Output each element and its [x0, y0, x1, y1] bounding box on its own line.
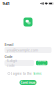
button[interactable]: I agree to the [8, 71, 41, 75]
staticText: Code [4, 54, 12, 59]
staticText: you@example.com [7, 47, 38, 52]
staticText: 9:41 [2, 1, 9, 6]
staticText: Send code [38, 59, 46, 67]
staticText: Terms [33, 71, 41, 75]
staticText: 6-digit code [7, 58, 17, 68]
button[interactable]: Send code [36, 61, 47, 65]
staticText: I agree to the [11, 71, 32, 75]
staticText: Continue [20, 80, 35, 85]
button[interactable]: Continue [19, 80, 36, 85]
staticText: Email [4, 42, 13, 47]
